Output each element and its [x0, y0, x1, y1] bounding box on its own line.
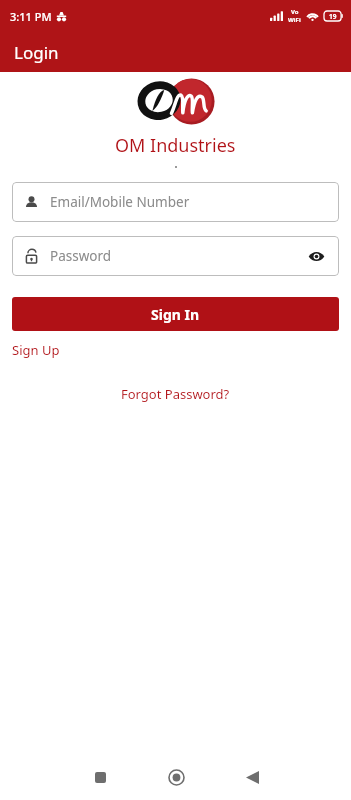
button[interactable]: Back	[228, 754, 276, 800]
staticText: Vo	[291, 8, 299, 16]
staticText: Login	[14, 41, 59, 64]
staticText: Email/Mobile Number	[50, 193, 327, 211]
staticText: OM Industries	[115, 133, 236, 158]
button[interactable]: Email/Mobile Number	[12, 182, 339, 222]
button[interactable]: Password	[12, 236, 339, 276]
staticText: WiFi	[288, 16, 301, 24]
button[interactable]: Recent apps	[76, 754, 124, 800]
staticText: Sign In	[151, 305, 200, 324]
button[interactable]: Forgot Password?	[117, 383, 234, 405]
staticText: Forgot Password?	[121, 385, 230, 403]
button[interactable]: Sign Up	[12, 340, 60, 360]
staticText: Password	[50, 247, 305, 265]
button[interactable]: Sign In	[12, 297, 339, 331]
button[interactable]: Home	[152, 754, 200, 800]
staticText: 19	[329, 12, 337, 21]
button[interactable]: Show password	[305, 245, 327, 267]
staticText: 3:11 PM	[10, 9, 52, 24]
staticText: Sign Up	[12, 341, 60, 359]
